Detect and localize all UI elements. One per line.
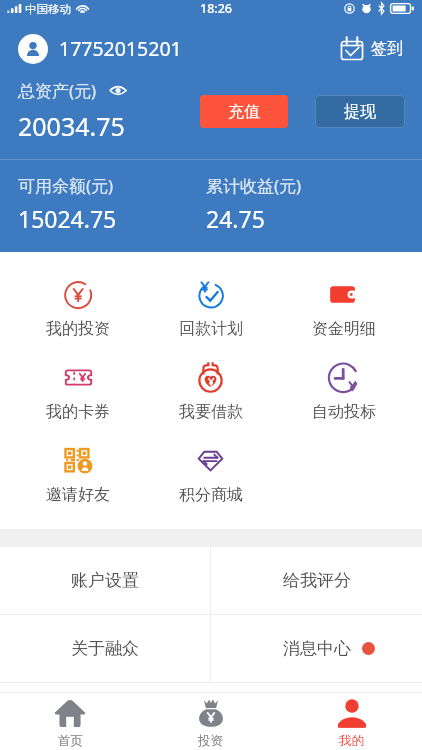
staticText: 18:26 [200,0,233,17]
staticText: 签到 [371,39,403,59]
staticText: 充值 [228,102,260,122]
button[interactable]: 积分商城 [144,445,277,505]
staticText: 我的 [339,733,364,749]
staticText: 投资 [198,733,223,749]
button[interactable]: 账户设置 [0,547,210,614]
button[interactable]: 提现 [315,95,405,128]
button[interactable]: 自动投标 [277,362,410,422]
staticText: 可用余额(元) [18,174,114,197]
button[interactable]: 投资 [140,693,281,750]
button[interactable]: 我的卡券 [12,362,144,422]
button[interactable]: Toggle balance visibility [109,85,127,96]
button[interactable]: 回款计划 [144,279,277,339]
staticText: 积分商城 [179,485,243,505]
button[interactable]: 充值 [200,95,288,128]
staticText: 20034.75 [18,109,125,143]
staticText: 回款计划 [179,319,243,339]
button[interactable]: 关于融众 [0,615,210,682]
staticText: 给我评分 [283,570,351,591]
staticText: 提现 [344,102,376,122]
staticText: 我的投资 [46,319,110,339]
staticText: 24.75 [206,203,265,234]
button[interactable]: 给我评分 [211,547,422,614]
staticText: 账户设置 [71,570,139,591]
staticText: 消息中心 [283,638,351,659]
staticText: 资金明细 [312,319,376,339]
button[interactable]: 我的 [281,693,422,750]
button[interactable]: 我的投资 [12,279,144,339]
staticText: 关于融众 [71,638,139,659]
staticText: 累计收益(元) [206,174,302,197]
button[interactable]: 消息中心 [211,615,422,682]
button[interactable]: 邀请好友 [12,445,144,505]
staticText: 17752015201 [59,35,182,62]
staticText: 总资产(元) [18,79,97,102]
button[interactable]: Profile [18,34,48,64]
button[interactable]: 首页 [0,693,140,750]
staticText: 我的卡券 [46,402,110,422]
staticText: 首页 [58,733,83,749]
staticText: 中国移动 [25,2,71,16]
button[interactable]: 我要借款 [144,362,277,422]
staticText: 15024.75 [18,203,117,234]
button[interactable]: 资金明细 [277,279,410,339]
staticText: 邀请好友 [46,485,110,505]
button[interactable]: 签到 [337,32,406,65]
staticText: 我要借款 [179,402,243,422]
staticText: 自动投标 [312,402,376,422]
